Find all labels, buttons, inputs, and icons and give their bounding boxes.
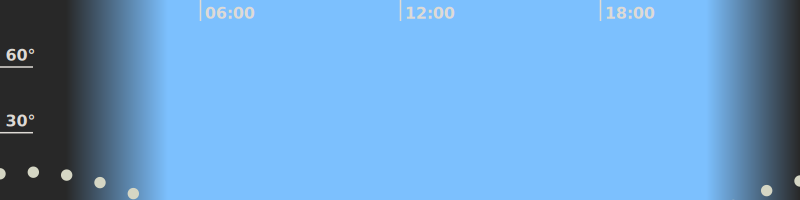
- staticText: 30°: [6, 112, 36, 130]
- staticText: 60°: [6, 46, 36, 65]
- staticText: 12:00: [405, 4, 455, 22]
- staticText: 18:00: [605, 4, 655, 22]
- staticText: 06:00: [205, 4, 255, 22]
